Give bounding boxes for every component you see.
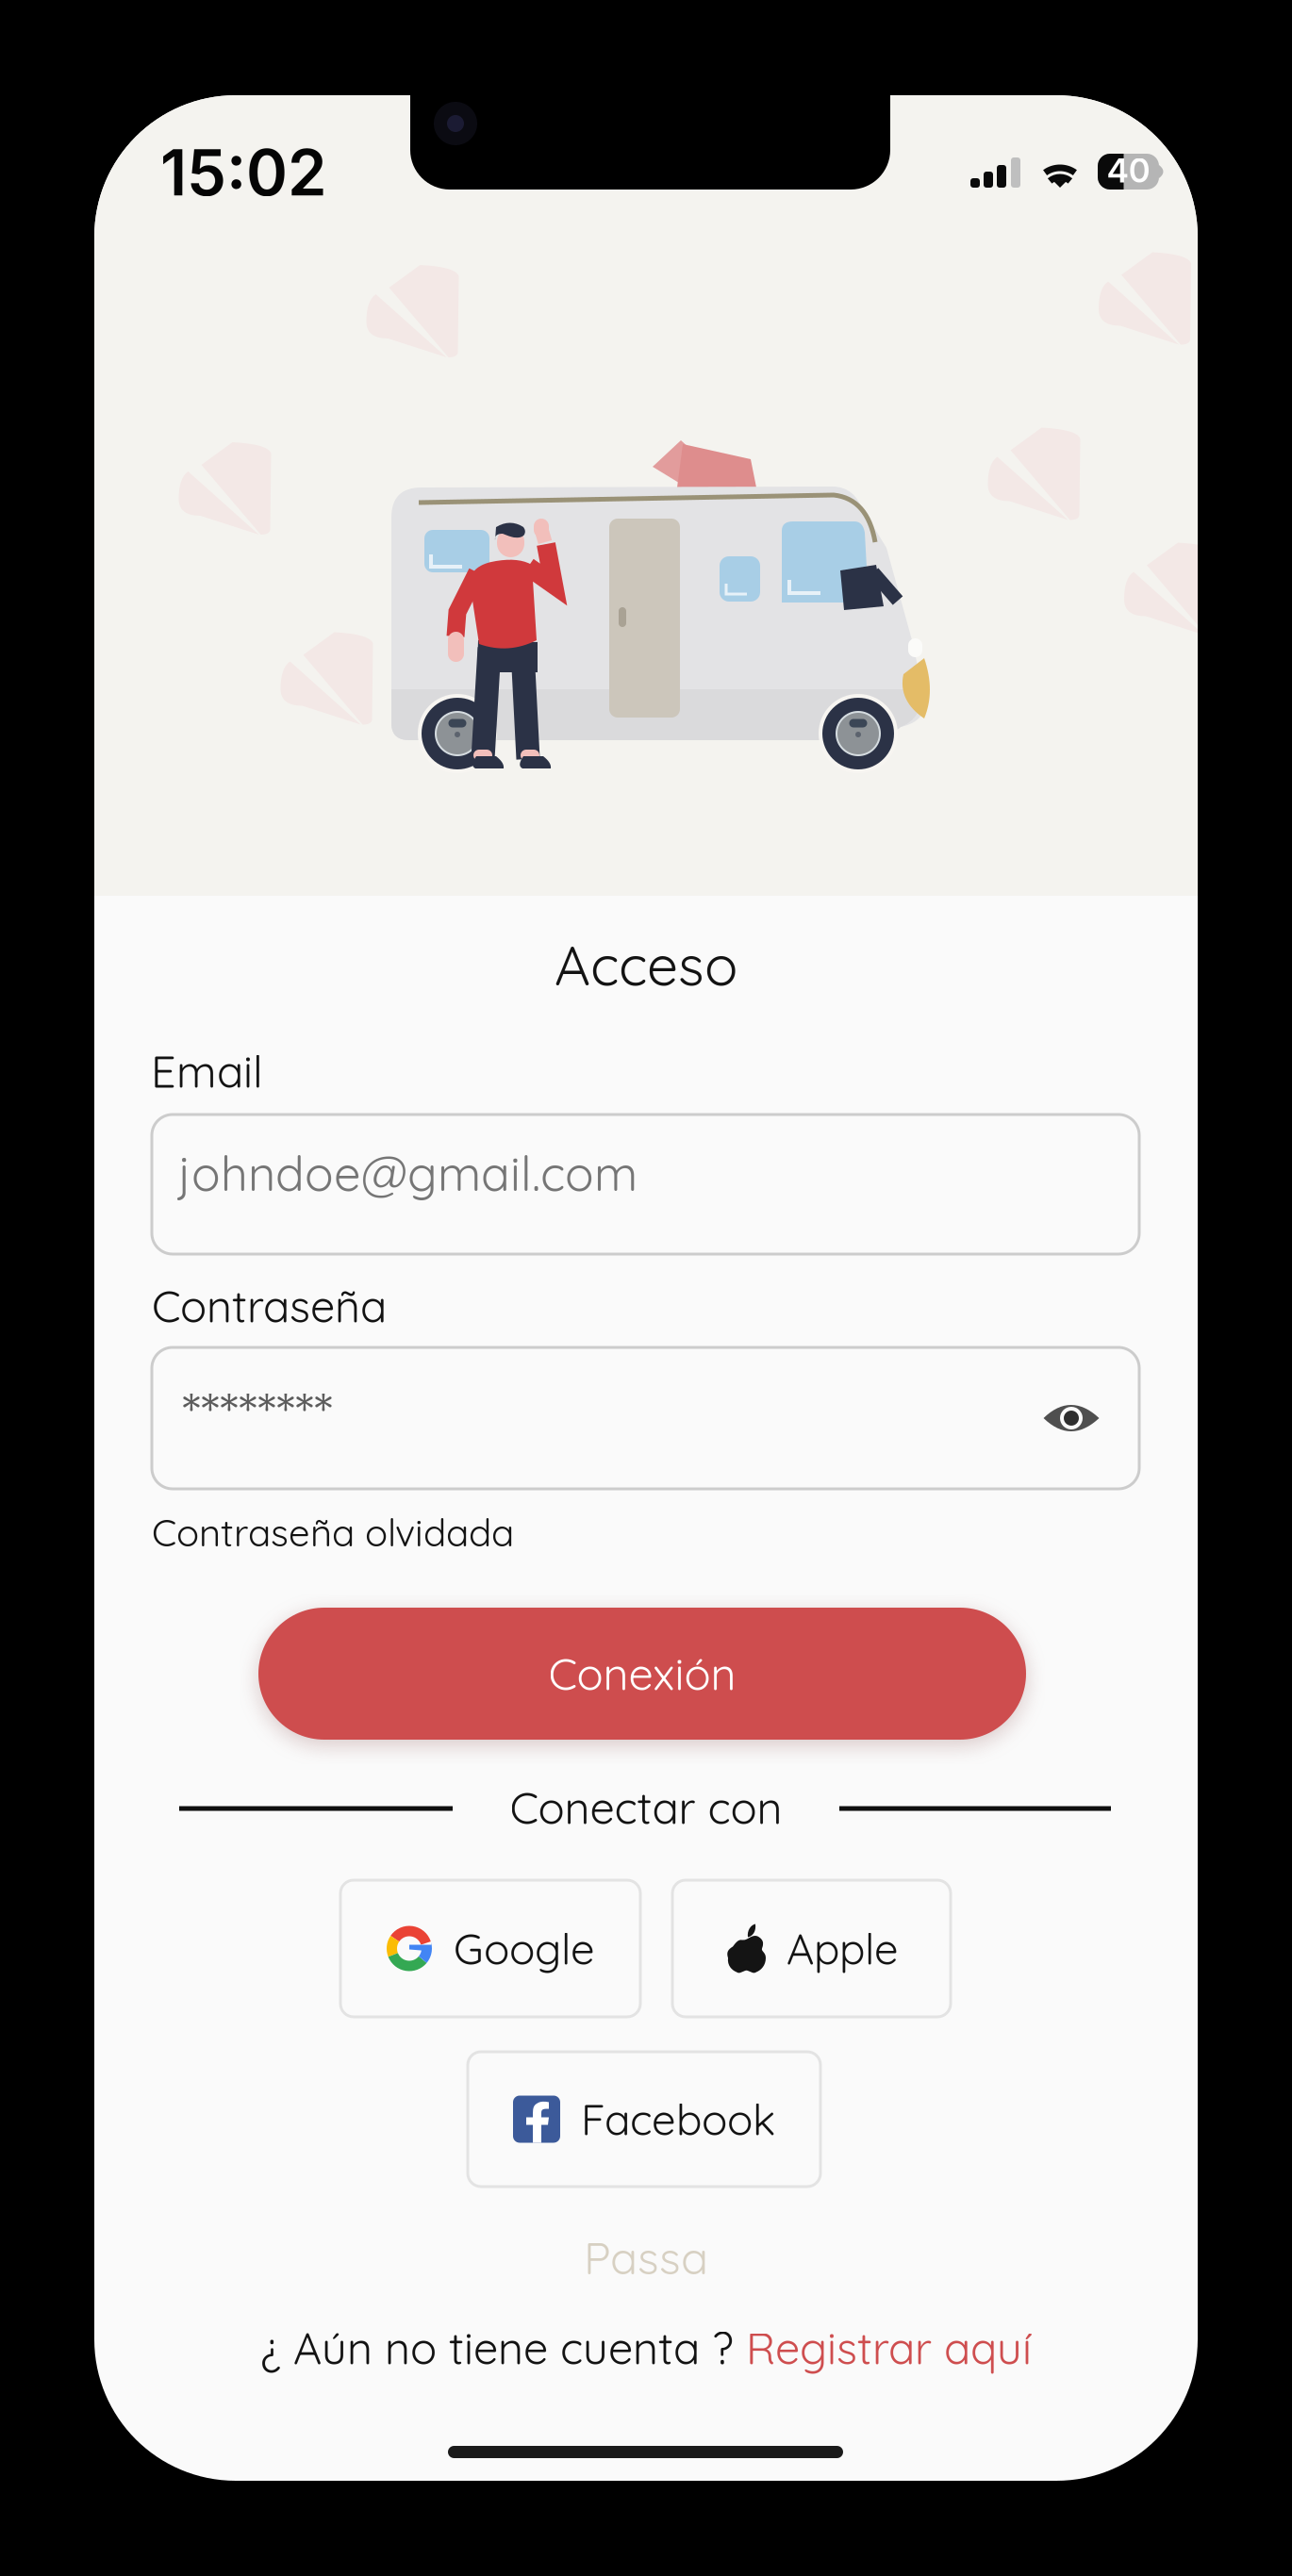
staticText: johndoe@gmail.com [178,1143,638,1203]
button[interactable]: Facebook [468,2052,820,2187]
staticText: 15:02 [160,135,327,211]
button[interactable]: Mostrar contraseña [1020,1373,1122,1463]
staticText: Acceso [555,930,737,999]
button[interactable]: Contraseña olvidada [152,1505,529,1560]
staticText: Apple [787,1922,899,1975]
button[interactable]: johndoe@gmail.com [152,1115,1139,1254]
staticText: Registrar aquí [746,2320,1032,2375]
staticText: 40 [1107,151,1150,190]
button[interactable]: Conexión [258,1608,1026,1740]
staticText: Contraseña [152,1278,387,1333]
staticText: Passa [584,2229,708,2286]
staticText: Google [454,1922,595,1975]
staticText: Email [151,1044,263,1099]
button[interactable]: Apple [672,1880,951,2017]
button[interactable]: ******** [152,1347,1139,1489]
staticText: Contraseña olvidada [152,1509,514,1556]
staticText: Conexión [548,1646,736,1701]
staticText: Facebook [581,2092,775,2146]
button[interactable]: Google [340,1880,640,2017]
staticText: ******** [182,1376,333,1451]
staticText: Conectar con [510,1780,782,1835]
button[interactable]: ¿ Aún no tiene cuenta ? [217,2311,1075,2385]
staticText: ¿ Aún no tiene cuenta ? [260,2320,746,2375]
